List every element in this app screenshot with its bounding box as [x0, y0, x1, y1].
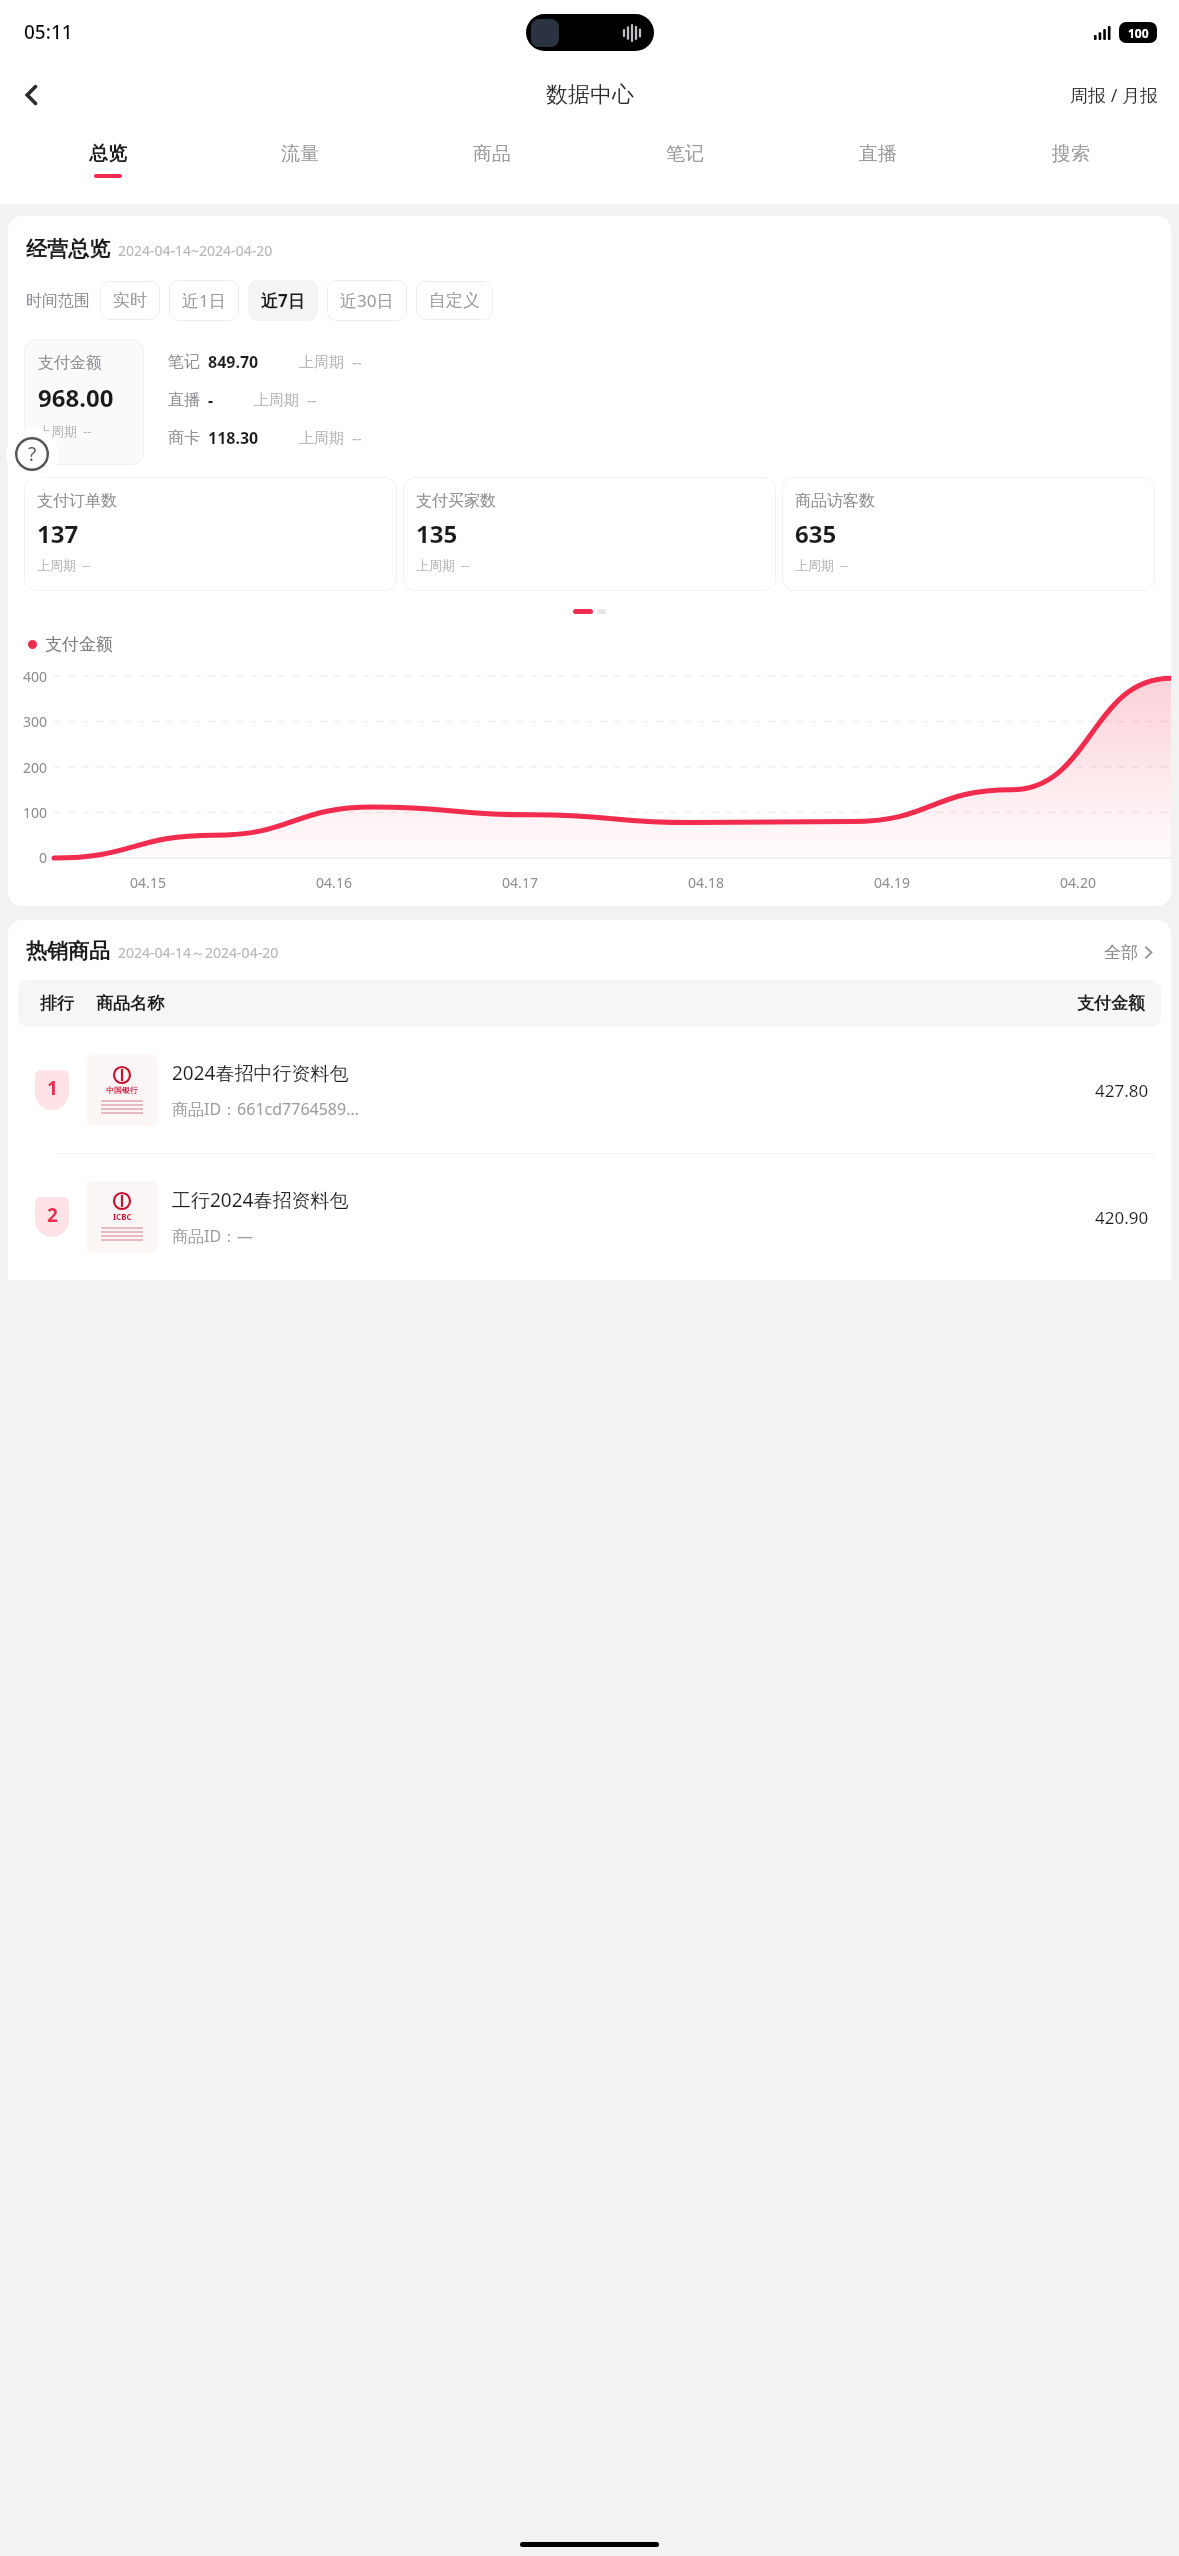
button[interactable]: 近1日 [169, 280, 239, 321]
button[interactable]: 直播 [781, 128, 974, 204]
button[interactable]: 周报 / 月报 [1050, 73, 1179, 118]
staticText: -- [461, 556, 470, 574]
staticText: 中国银行 [106, 1085, 138, 1095]
staticText: -- [352, 352, 362, 372]
button[interactable]: 近7日 [248, 280, 318, 321]
staticText: 118.30 [208, 427, 259, 449]
staticText: 周报 / 月报 [1070, 83, 1159, 108]
staticText: 近7日 [261, 289, 305, 312]
staticText: 自定义 [429, 290, 480, 311]
staticText: 300 [23, 712, 48, 731]
staticText: 支付买家数 [416, 491, 496, 511]
button[interactable]: 自定义 [416, 281, 493, 320]
staticText: 2024春招中行资料包 [172, 1060, 349, 1086]
staticText: 849.70 [208, 351, 259, 373]
staticText: 137 [37, 517, 79, 550]
staticText: 支付金额 [1077, 993, 1145, 1014]
button[interactable]: 实时 [100, 281, 160, 320]
staticText: 04.16 [316, 873, 352, 892]
staticText: 商品 [473, 142, 511, 166]
staticText: -- [307, 390, 317, 410]
staticText: 上周期 [38, 423, 77, 439]
staticText: -- [352, 428, 362, 448]
button[interactable]: Help [6, 428, 58, 480]
staticText: 近30日 [340, 289, 394, 312]
staticText: -- [840, 556, 849, 574]
staticText: 100 [1128, 25, 1149, 41]
button[interactable]: 支付金额 [24, 339, 144, 465]
staticText: 04.19 [874, 873, 910, 892]
staticText: 总览 [89, 142, 127, 166]
staticText: 上周期 [37, 557, 76, 573]
button[interactable]: 流量 [204, 128, 396, 204]
staticText: 135 [416, 517, 458, 550]
button[interactable]: 商品 [396, 128, 588, 204]
staticText: 上周期 [299, 353, 344, 372]
staticText: 直播 [859, 142, 897, 166]
staticText: -- [83, 422, 92, 440]
staticText: 搜索 [1052, 142, 1090, 166]
button[interactable]: 1 [8, 1027, 1171, 1153]
staticText: 经营总览 [26, 236, 110, 262]
staticText: 热销商品 [26, 938, 110, 964]
staticText: 0 [39, 848, 48, 867]
button[interactable]: 笔记 [588, 128, 781, 204]
staticText: 2024-04-14~2024-04-20 [118, 241, 273, 260]
staticText: - [208, 389, 214, 411]
staticText: 时间范围 [26, 291, 90, 311]
staticText: 04.18 [688, 873, 724, 892]
staticText: 商卡 [168, 428, 200, 448]
staticText: 商品访客数 [795, 491, 875, 511]
button[interactable]: 支付订单数 [24, 477, 397, 591]
staticText: 968.00 [38, 381, 114, 414]
staticText: 支付金额 [45, 634, 113, 655]
staticText: 支付订单数 [37, 491, 117, 511]
staticText: 上周期 [795, 557, 834, 573]
staticText: 近1日 [182, 289, 226, 312]
staticText: 工行2024春招资料包 [172, 1187, 349, 1213]
staticText: 直播 [168, 390, 200, 410]
button[interactable]: 近30日 [327, 280, 407, 321]
button[interactable]: 支付买家数 [403, 477, 776, 591]
staticText: 商品名称 [96, 993, 164, 1014]
staticText: 笔记 [666, 142, 704, 166]
staticText: 100 [23, 803, 48, 822]
button[interactable]: 全部 [1104, 942, 1155, 964]
button[interactable]: 总览 [12, 128, 204, 204]
staticText: 05:11 [24, 19, 73, 45]
button[interactable]: Back [6, 69, 58, 121]
staticText: 上周期 [299, 429, 344, 448]
staticText: 上周期 [254, 391, 299, 410]
staticText: 2024-04-14～2024-04-20 [118, 943, 279, 962]
staticText: 635 [795, 517, 837, 550]
staticText: -- [82, 556, 91, 574]
staticText: 2 [47, 1202, 58, 1228]
staticText: 实时 [113, 290, 147, 311]
staticText: 支付金额 [38, 353, 102, 373]
staticText: 全部 [1104, 942, 1138, 963]
staticText: 400 [23, 667, 48, 686]
staticText: 04.17 [502, 873, 538, 892]
staticText: 04.15 [130, 873, 166, 892]
staticText: 04.20 [1060, 873, 1096, 892]
staticText: 427.80 [1095, 1079, 1149, 1102]
staticText: 上周期 [416, 557, 455, 573]
staticText: 商品ID：— [172, 1225, 254, 1247]
staticText: 数据中心 [546, 81, 634, 109]
staticText: ICBC [113, 1211, 132, 1222]
staticText: 流量 [281, 142, 319, 166]
staticText: ? [28, 441, 37, 467]
staticText: 200 [23, 758, 48, 777]
staticText: 笔记 [168, 352, 200, 372]
button[interactable]: 商品访客数 [782, 477, 1155, 591]
staticText: 420.90 [1095, 1206, 1149, 1229]
button[interactable]: 2 [8, 1154, 1171, 1280]
staticText: 排行 [40, 993, 74, 1014]
staticText: 商品ID：661cd7764589… [172, 1098, 359, 1120]
button[interactable]: 搜索 [974, 128, 1167, 204]
staticText: 1 [47, 1075, 58, 1101]
